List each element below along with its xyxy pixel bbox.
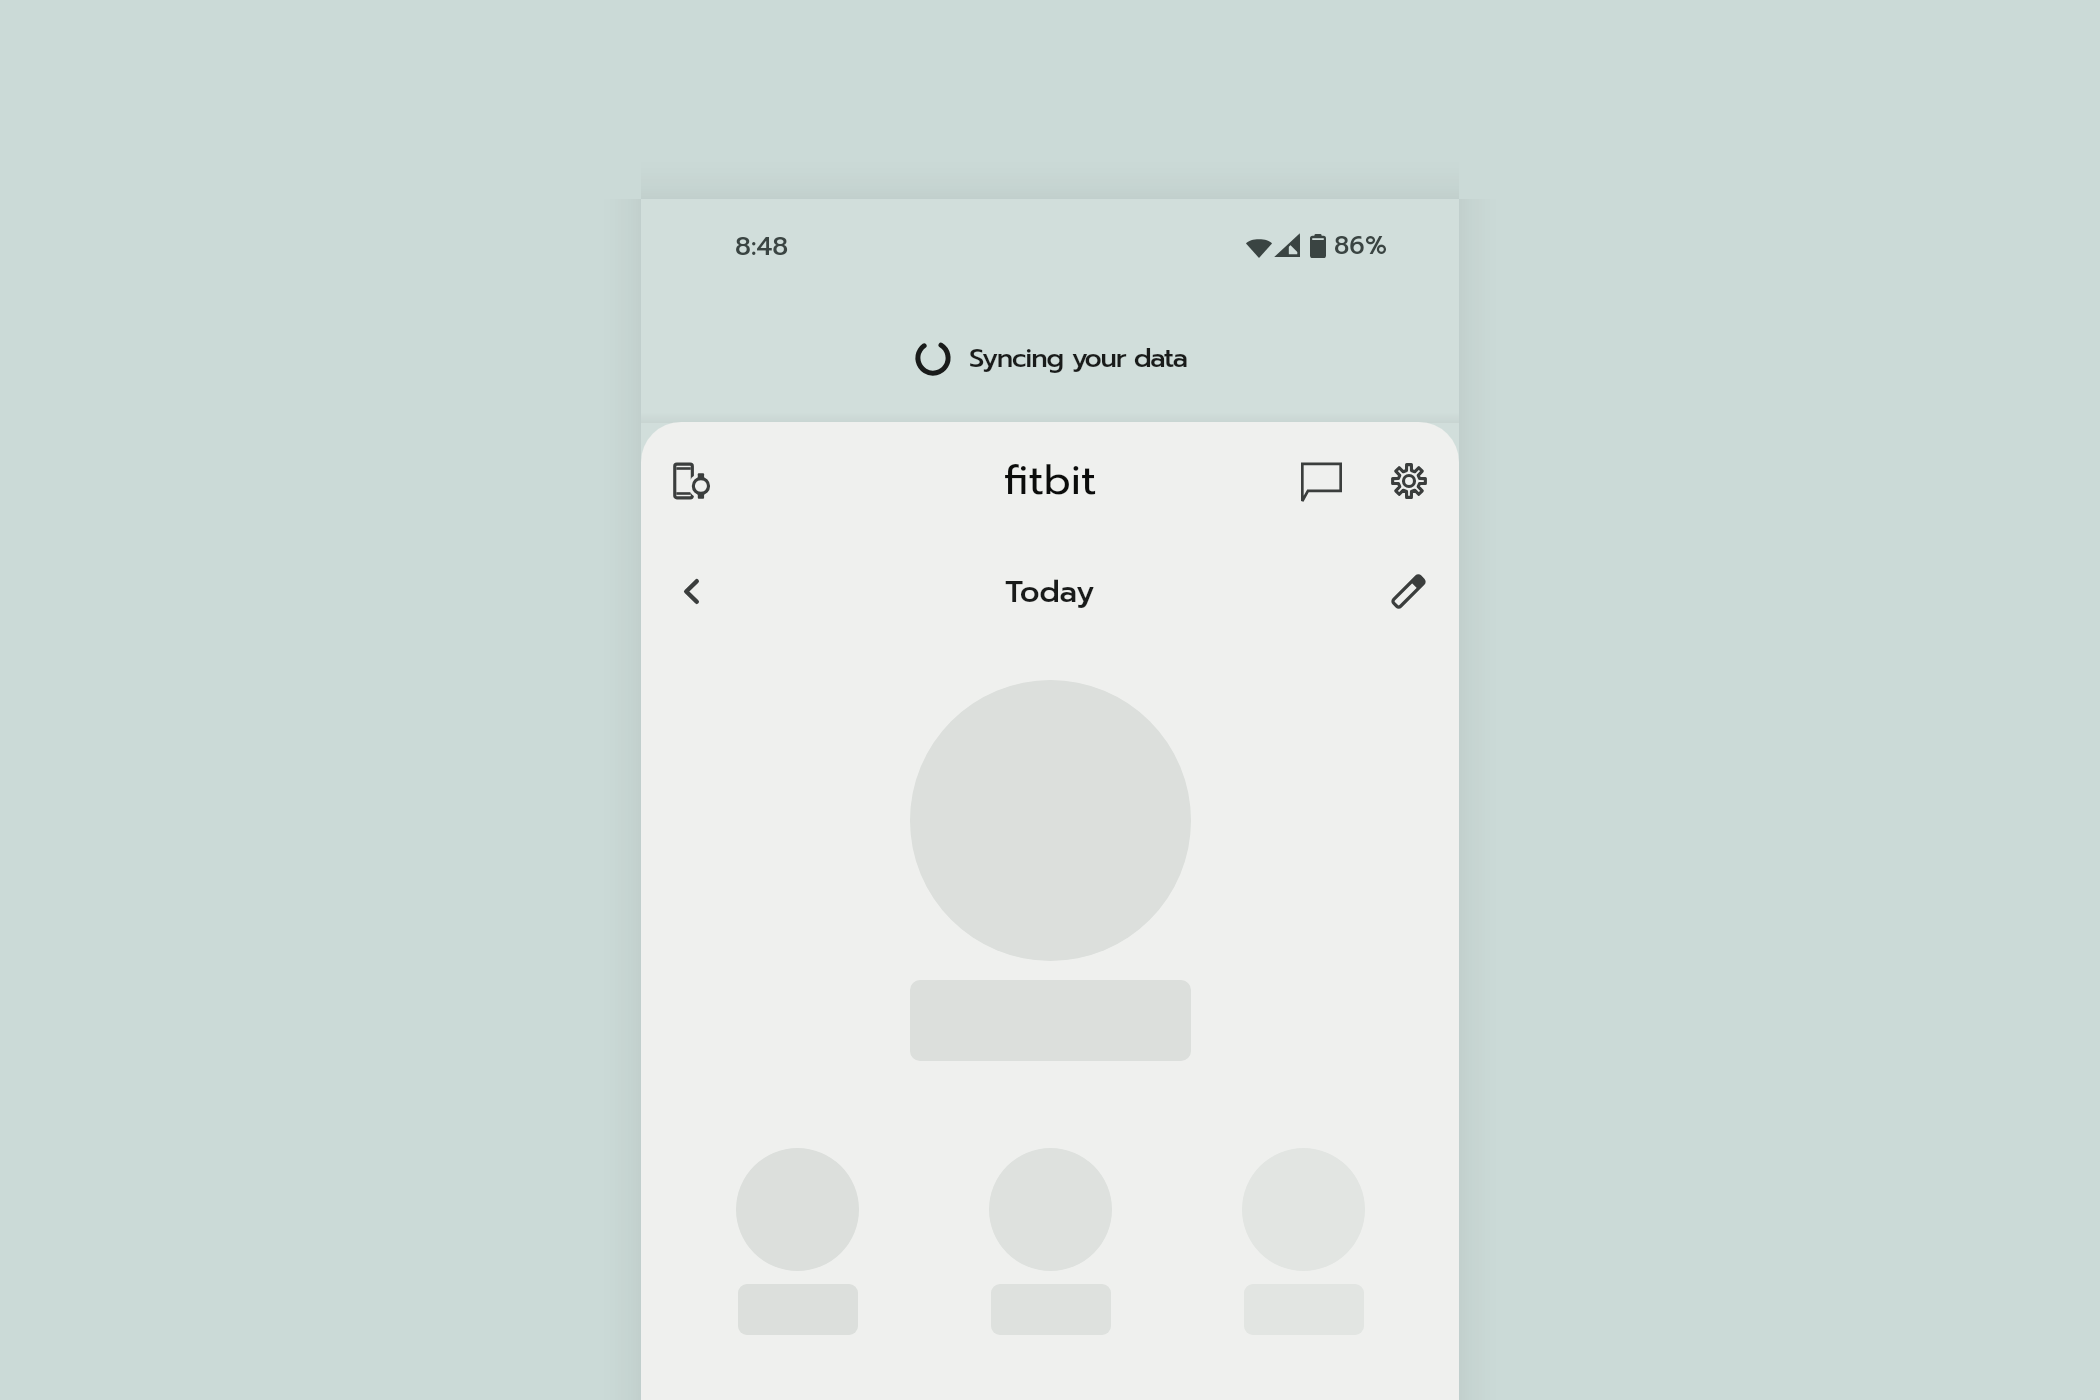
button[interactable]: Devices: [656, 446, 726, 516]
staticText: 86%: [1334, 227, 1388, 265]
staticText: fitbit: [1004, 449, 1097, 511]
button[interactable]: Settings: [1374, 446, 1444, 516]
staticText: Syncing your data: [969, 338, 1187, 379]
button[interactable]: Back: [661, 561, 721, 621]
button[interactable]: Edit: [1378, 561, 1438, 621]
button[interactable]: Messages: [1286, 446, 1356, 516]
staticText: Today: [1005, 568, 1095, 615]
staticText: 8:48: [735, 227, 789, 266]
